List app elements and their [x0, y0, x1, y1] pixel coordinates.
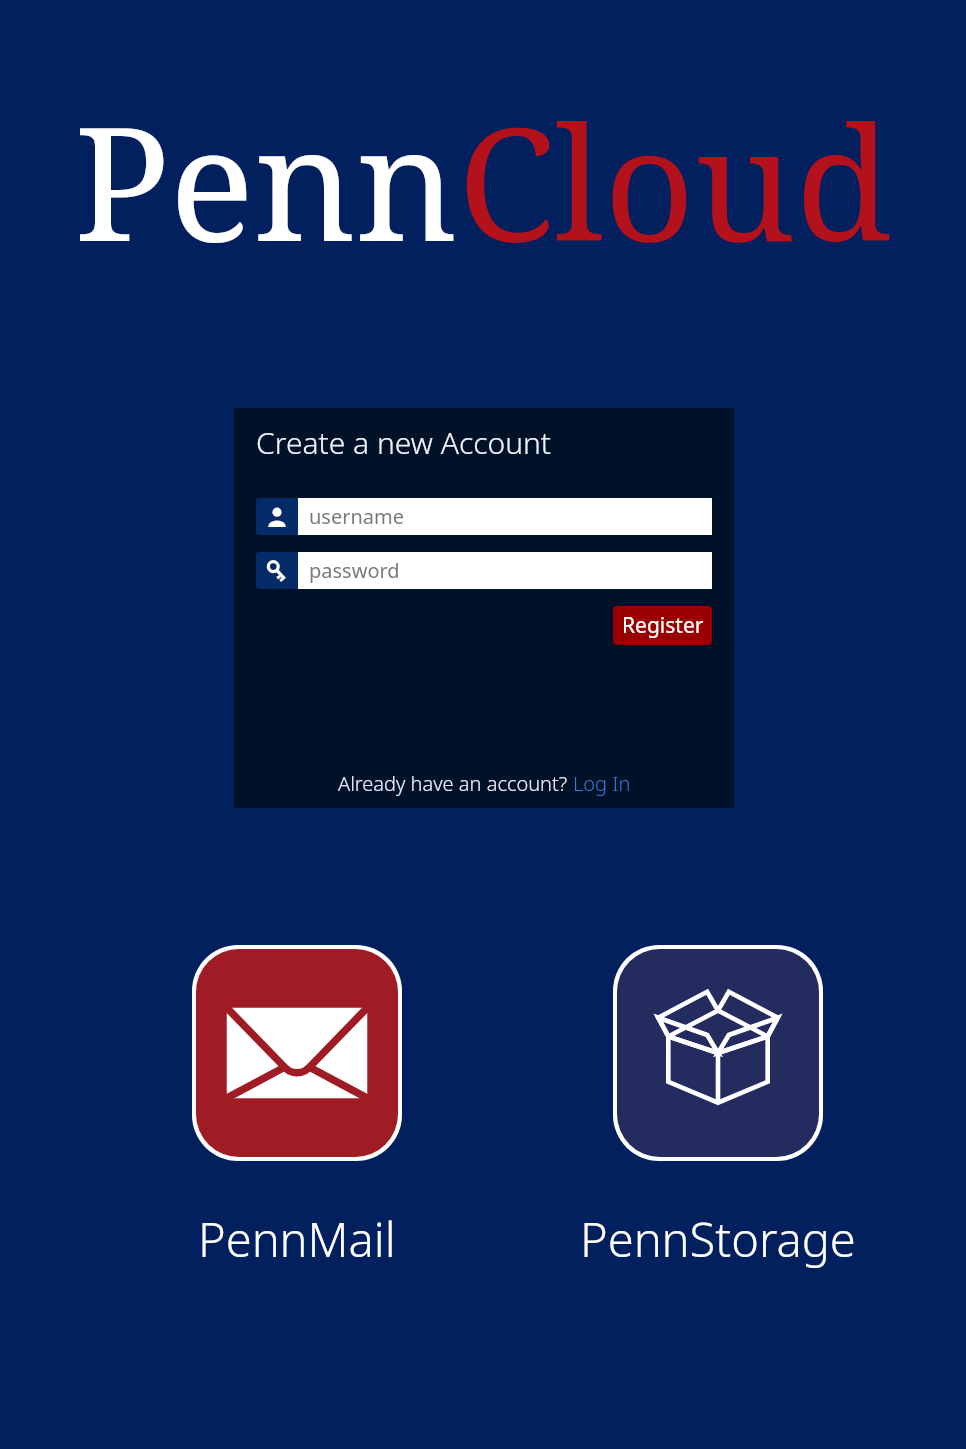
staticText: Create a new Account	[256, 422, 552, 463]
button[interactable]: Log In	[573, 770, 631, 797]
button[interactable]: PennMail	[196, 949, 398, 1157]
button[interactable]: Register	[613, 606, 712, 645]
staticText: Register	[622, 611, 704, 640]
staticText: PennCloud	[74, 72, 893, 287]
button[interactable]: PennStorage	[580, 1207, 856, 1271]
button[interactable]: PennStorage	[617, 949, 819, 1157]
staticText: PennMail	[198, 1207, 396, 1271]
staticText: username	[309, 503, 405, 530]
other: Username	[256, 498, 298, 535]
staticText: Already have an account?	[338, 770, 573, 797]
button[interactable]: password	[298, 552, 712, 589]
button[interactable]: PennMail	[198, 1207, 396, 1271]
staticText: Log In	[573, 770, 631, 797]
button[interactable]: username	[298, 498, 712, 535]
staticText: PennStorage	[580, 1207, 856, 1271]
other: Password	[256, 552, 298, 589]
staticText: password	[309, 557, 400, 584]
